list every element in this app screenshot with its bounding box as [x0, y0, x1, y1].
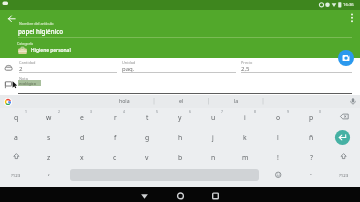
button[interactable] — [99, 129, 131, 146]
button[interactable] — [131, 148, 163, 165]
staticText: 2 — [19, 65, 23, 73]
staticText: 4 — [123, 109, 125, 114]
staticText: ?123 — [339, 172, 349, 178]
staticText: c — [113, 153, 117, 162]
button[interactable] — [99, 110, 131, 127]
button[interactable] — [229, 129, 261, 146]
button[interactable] — [295, 148, 327, 165]
button[interactable] — [172, 188, 189, 202]
staticText: i — [244, 113, 246, 122]
staticText: la — [234, 97, 239, 104]
staticText: p — [309, 113, 314, 122]
staticText: ecológico — [19, 81, 36, 86]
staticText: 9 — [287, 109, 289, 114]
button[interactable] — [136, 188, 153, 202]
staticText: el — [179, 97, 184, 104]
button[interactable] — [33, 110, 65, 127]
button[interactable] — [229, 110, 261, 127]
staticText: y — [178, 113, 182, 122]
staticText: q — [14, 113, 19, 122]
staticText: Categoría — [17, 41, 33, 46]
staticText: 3 — [90, 109, 92, 114]
button[interactable] — [131, 129, 163, 146]
staticText: x — [80, 153, 84, 162]
staticText: 1 — [25, 109, 27, 114]
button[interactable] — [0, 129, 32, 146]
staticText: Precio — [241, 60, 253, 65]
staticText: v — [145, 153, 149, 162]
staticText: r — [114, 113, 117, 122]
staticText: 5 — [156, 109, 158, 114]
button[interactable] — [66, 110, 98, 127]
button[interactable] — [338, 50, 354, 66]
staticText: f — [114, 133, 117, 142]
staticText: w — [46, 113, 52, 122]
staticText: l — [277, 133, 279, 142]
button[interactable] — [295, 110, 327, 127]
staticText: Higiene personal — [31, 47, 71, 54]
button[interactable] — [99, 148, 131, 165]
staticText: Cantidad — [19, 60, 36, 65]
button[interactable] — [229, 148, 261, 165]
button[interactable] — [33, 129, 65, 146]
staticText: . — [310, 168, 312, 178]
button[interactable] — [2, 11, 20, 27]
staticText: n — [211, 153, 216, 162]
staticText: 16:36 — [343, 2, 354, 8]
staticText: , — [48, 168, 50, 178]
staticText: ñ — [309, 133, 314, 142]
button[interactable] — [262, 129, 294, 146]
staticText: papel higiénico — [18, 27, 64, 35]
staticText: hola — [119, 97, 130, 104]
button[interactable] — [164, 129, 196, 146]
staticText: a — [14, 133, 18, 142]
button[interactable] — [197, 148, 229, 165]
staticText: 8 — [254, 109, 256, 114]
staticText: Nota — [19, 76, 28, 81]
staticText: 2 — [58, 109, 60, 114]
button[interactable] — [131, 110, 163, 127]
staticText: t — [146, 113, 149, 122]
button[interactable] — [262, 148, 294, 165]
button[interactable] — [197, 129, 229, 146]
staticText: 2,5 — [241, 65, 250, 73]
staticText: ?123 — [11, 172, 21, 178]
button[interactable] — [207, 188, 224, 202]
staticText: z — [47, 153, 51, 162]
staticText: j — [212, 133, 214, 142]
staticText: paq. — [122, 65, 135, 73]
staticText: k — [243, 133, 247, 142]
staticText: ? — [310, 153, 313, 162]
staticText: m — [242, 153, 249, 162]
button[interactable] — [0, 167, 33, 184]
staticText: Unidad — [122, 60, 136, 65]
staticText: e — [80, 113, 84, 122]
button[interactable] — [33, 148, 65, 165]
button[interactable] — [197, 110, 229, 127]
staticText: b — [178, 153, 183, 162]
staticText: h — [178, 133, 183, 142]
button[interactable] — [295, 129, 327, 146]
staticText: o — [276, 113, 281, 122]
button[interactable]: Higiene personal — [16, 44, 126, 56]
staticText: u — [211, 113, 216, 122]
staticText: d — [80, 133, 85, 142]
button[interactable] — [327, 167, 360, 184]
button[interactable] — [262, 110, 294, 127]
button[interactable] — [164, 148, 196, 165]
staticText: g — [145, 133, 150, 142]
button[interactable] — [0, 110, 32, 127]
button[interactable] — [164, 110, 196, 127]
staticText: 6 — [189, 109, 191, 114]
staticText: ! — [277, 153, 279, 162]
button[interactable] — [66, 148, 98, 165]
staticText: Nombre del artículo — [19, 21, 54, 26]
button[interactable] — [66, 129, 98, 146]
staticText: 7 — [221, 109, 223, 114]
button[interactable] — [346, 11, 358, 26]
staticText: s — [47, 133, 51, 142]
staticText: 0 — [319, 109, 321, 114]
